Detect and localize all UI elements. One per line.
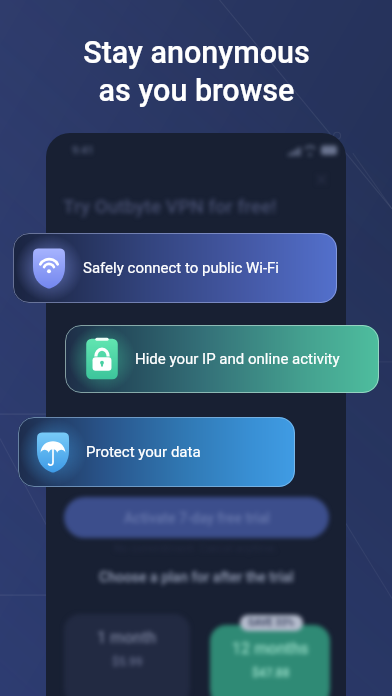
- staticText: 1 month: [97, 628, 157, 647]
- staticText: Safely connect to public Wi-Fi: [83, 259, 279, 277]
- button[interactable]: Safely connect to public Wi-Fi: [13, 233, 337, 303]
- staticText: 9:41: [72, 144, 94, 157]
- button[interactable]: SAVE 33%: [248, 617, 295, 629]
- staticText: SAVE 33%: [248, 617, 295, 629]
- button[interactable]: Protect your data: [18, 417, 295, 487]
- staticText: 12 months: [232, 639, 309, 658]
- staticText: Stay anonymous as you browse: [83, 35, 310, 109]
- button[interactable]: 1 month: [64, 614, 190, 696]
- staticText: Activate 7-day free trial: [124, 510, 270, 526]
- staticText: Protect your data: [86, 443, 201, 461]
- staticText: $47.88: [252, 666, 290, 680]
- button[interactable]: Activate 7-day free trial: [64, 497, 329, 538]
- staticText: Hide your IP and online activity: [135, 350, 340, 368]
- button[interactable]: Hide your IP and online activity: [65, 325, 379, 393]
- staticText: Try Outbyte VPN for free!: [63, 195, 277, 217]
- staticText: $5.99: [112, 655, 143, 669]
- staticText: Choose a plan for after the trial: [99, 569, 294, 585]
- button[interactable]: 12 months: [210, 625, 330, 696]
